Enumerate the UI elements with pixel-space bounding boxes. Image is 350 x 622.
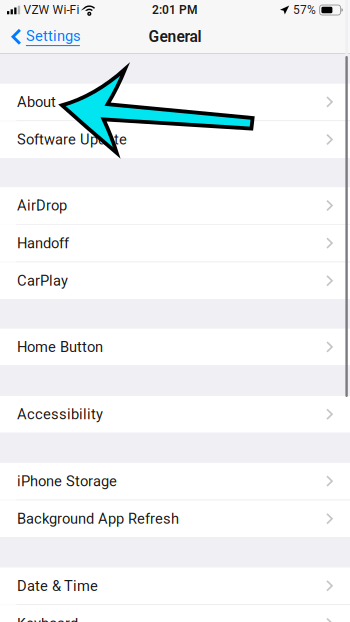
- button[interactable]: iPhone Storage: [0, 463, 350, 500]
- button[interactable]: AirDrop: [0, 187, 350, 224]
- button[interactable]: Software Update: [0, 121, 350, 158]
- button[interactable]: Handoff: [0, 225, 350, 262]
- staticText: AirDrop: [17, 197, 67, 214]
- button[interactable]: Settings: [0, 21, 90, 52]
- staticText: 2:01 PM: [152, 3, 198, 17]
- staticText: VZW Wi-Fi: [24, 3, 80, 17]
- staticText: Handoff: [17, 235, 69, 252]
- button[interactable]: Date & Time: [0, 567, 350, 604]
- staticText: General: [148, 28, 201, 46]
- button[interactable]: Home Button: [0, 329, 350, 365]
- staticText: CarPlay: [17, 272, 68, 289]
- staticText: Keyboard: [17, 615, 78, 622]
- button[interactable]: Keyboard: [0, 605, 350, 622]
- staticText: Accessibility: [17, 406, 103, 423]
- button[interactable]: CarPlay: [0, 262, 350, 299]
- staticText: About: [17, 93, 56, 111]
- button[interactable]: Accessibility: [0, 396, 350, 433]
- staticText: Date & Time: [17, 577, 98, 594]
- staticText: Home Button: [17, 338, 103, 356]
- staticText: Settings: [26, 27, 81, 45]
- staticText: Software Update: [17, 131, 127, 148]
- staticText: 57%: [293, 3, 316, 17]
- staticText: Background App Refresh: [17, 510, 179, 527]
- button[interactable]: About: [0, 84, 350, 120]
- button[interactable]: Background App Refresh: [0, 500, 350, 537]
- staticText: iPhone Storage: [17, 473, 117, 490]
